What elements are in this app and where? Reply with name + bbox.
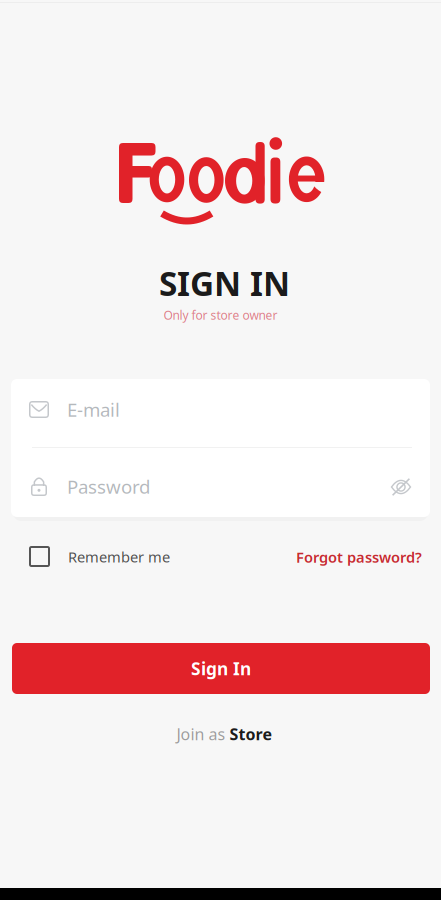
button[interactable]: Forgot password? bbox=[282, 544, 422, 570]
staticText: Sign In bbox=[191, 657, 251, 680]
staticText: Only for store owner bbox=[163, 307, 277, 323]
button[interactable]: Show password bbox=[381, 467, 421, 507]
button[interactable]: Join as bbox=[4, 724, 441, 744]
staticText: E-mail bbox=[67, 397, 120, 422]
staticText: Remember me bbox=[68, 547, 170, 566]
button[interactable]: Remember me bbox=[29, 544, 209, 570]
button[interactable]: Sign In bbox=[12, 643, 430, 694]
staticText: Store bbox=[229, 723, 272, 745]
staticText: Password bbox=[67, 474, 150, 499]
staticText: Forgot password? bbox=[296, 547, 422, 567]
staticText: SIGN IN bbox=[159, 261, 290, 305]
staticText: Join as bbox=[176, 723, 225, 745]
